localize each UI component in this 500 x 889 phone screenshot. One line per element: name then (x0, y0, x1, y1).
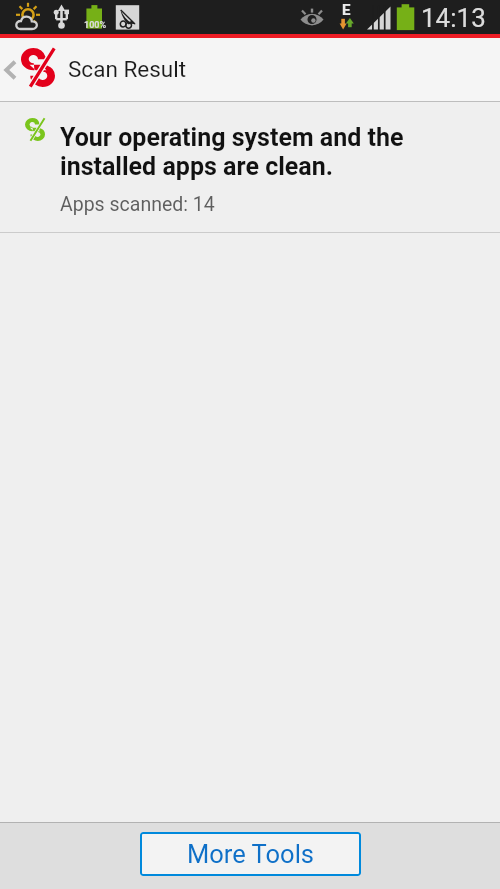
button[interactable]: Navigate up (0, 38, 62, 101)
staticText: More Tools (187, 839, 314, 869)
staticText: Your operating system and the installed … (60, 123, 482, 181)
staticText: E (342, 1, 351, 19)
button[interactable]: More Tools (140, 832, 361, 876)
staticText: Apps scanned: 14 (60, 193, 215, 216)
staticText: 14:13 (421, 3, 486, 33)
staticText: Scan Result (68, 56, 187, 82)
staticText: 100% (84, 20, 107, 31)
